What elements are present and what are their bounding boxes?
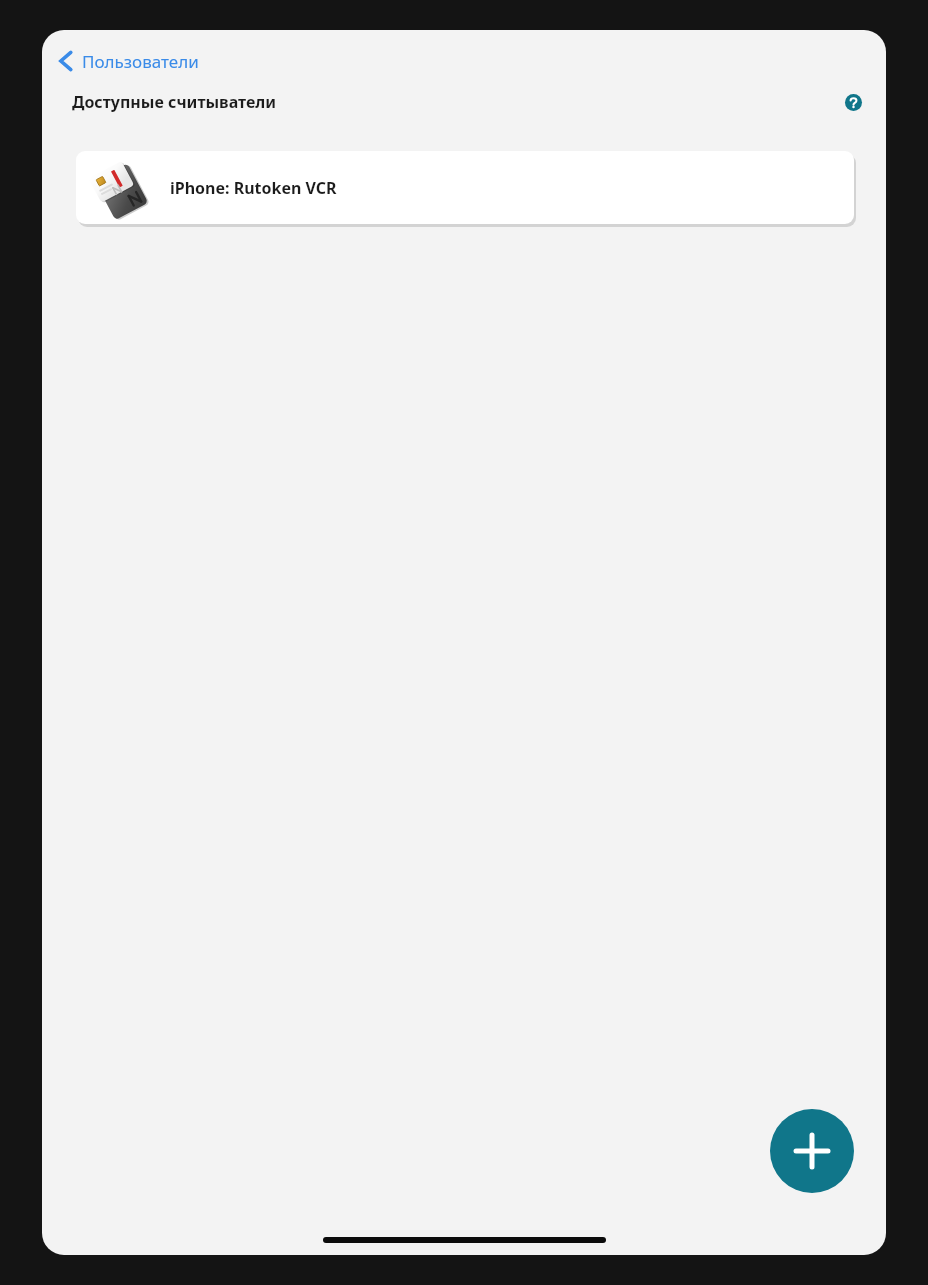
button[interactable]: Help (842, 91, 864, 113)
button[interactable]: Add reader (770, 1109, 854, 1193)
button[interactable]: Пользователи (50, 43, 207, 79)
button[interactable]: iPhone: Rutoken VCR (76, 151, 854, 224)
staticText: Доступные считыватели (72, 91, 277, 113)
staticText: iPhone: Rutoken VCR (170, 177, 337, 199)
staticText: Пользователи (82, 50, 199, 73)
